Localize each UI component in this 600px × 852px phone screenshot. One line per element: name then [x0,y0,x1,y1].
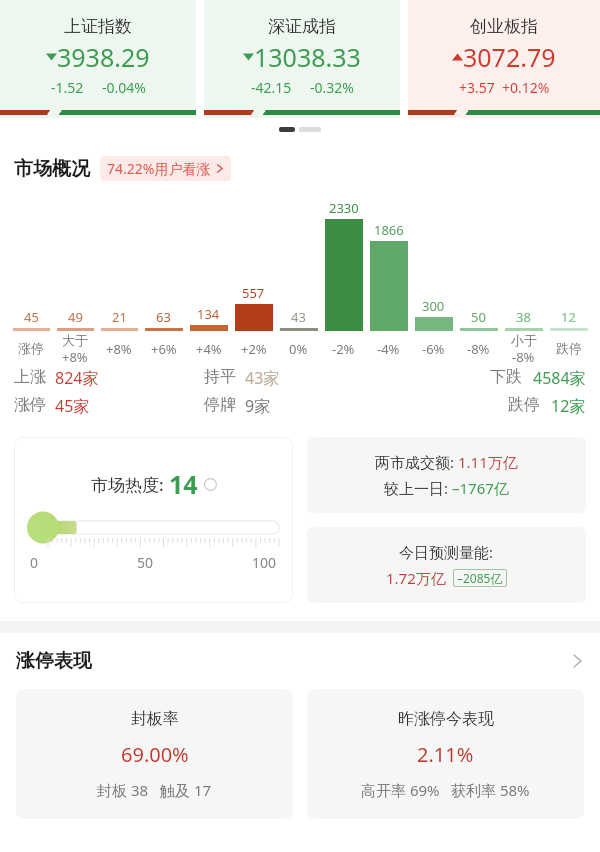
staticText: 3072.79 [463,40,556,74]
staticText: 134 [197,305,220,323]
staticText: 12 [561,308,576,326]
staticText: 小于 [511,332,537,348]
button[interactable]: 创业板指 [408,0,600,118]
button[interactable]: 今日预测量能: [307,527,586,603]
staticText: -8% [467,340,490,358]
staticText: 2.11% [417,741,474,768]
staticText: -1.52 [51,78,84,97]
staticText: 市场热度: [91,473,169,496]
staticText: 69.00% [121,741,189,768]
staticText: 0 [30,553,39,572]
staticText: 封板 38 [97,780,149,800]
button[interactable]: 市场热度: [14,437,293,603]
staticText: -6% [422,340,445,358]
staticText: -42.15 [251,78,292,97]
staticText: 封板率 [131,709,179,729]
staticText: +0.12% [502,78,550,97]
staticText: 较上一日: [384,478,452,498]
staticText: 557 [242,284,265,302]
staticText: 两市成交额: [375,452,458,472]
button[interactable]: 两市成交额: [307,437,586,513]
staticText: 深证成指 [268,16,336,37]
staticText: 43家 [245,367,280,389]
staticText: 昨涨停今表现 [398,709,494,729]
staticText: 12家 [551,395,586,417]
staticText: 上证指数 [64,16,132,37]
staticText: 涨停 [14,395,46,415]
staticText: -0.04% [102,78,146,97]
staticText: 100 [252,553,277,572]
staticText: +8% [106,340,132,358]
staticText: 50 [471,308,486,326]
staticText: 50 [137,553,154,572]
staticText: 13038.33 [254,40,361,74]
staticText: 涨停表现 [16,649,92,673]
staticText: +2% [241,340,267,358]
button[interactable]: 封板率 [16,689,293,819]
staticText: –1767亿 [452,478,509,498]
button[interactable]: 昨涨停今表现 [307,689,584,819]
button[interactable]: 上证指数 [0,0,196,118]
staticText: 38 [516,308,531,326]
staticText: 2330 [329,199,359,217]
staticText: 9家 [245,395,271,417]
staticText: 824家 [55,367,99,389]
staticText: 21 [112,308,127,326]
button[interactable]: 涨停表现 [0,649,600,673]
staticText: +6% [151,340,177,358]
button[interactable]: 74.22%用户看涨 [100,156,231,181]
staticText: 大于 [62,332,88,348]
staticText: 跌停 [508,395,540,415]
staticText: -0.32% [310,78,354,97]
staticText: 下跌 [490,367,522,387]
staticText: 1866 [374,221,404,239]
staticText: 今日预测量能: [399,542,494,562]
staticText: 49 [68,308,83,326]
staticText: 14 [169,467,198,501]
staticText: -4% [377,340,400,358]
staticText: 3938.29 [57,40,150,74]
staticText: 创业板指 [470,16,538,37]
staticText: 持平 [204,367,236,387]
other: 帮助 [204,478,217,491]
staticText: 43 [291,308,306,326]
staticText: 高开率 69% [361,780,440,800]
staticText: 触及 17 [160,780,212,800]
staticText: 获利率 58% [451,780,530,800]
staticText: 63 [156,308,171,326]
staticText: 市场概况 [14,157,90,181]
staticText: 45家 [55,395,90,417]
staticText: 300 [422,297,445,315]
staticText: -2% [332,340,355,358]
staticText: 1.72万亿 [386,568,446,588]
staticText: +4% [196,340,222,358]
staticText: 停牌 [204,395,236,415]
button[interactable]: 深证成指 [204,0,400,118]
staticText: 涨停 [18,340,44,356]
staticText: –2085亿 [457,570,503,586]
staticText: 1.11万亿 [458,452,518,472]
staticText: 4584家 [533,367,586,389]
staticText: 0% [289,340,308,358]
staticText: 跌停 [556,340,582,356]
staticText: 上涨 [14,367,46,387]
staticText: 74.22%用户看涨 [107,159,211,178]
staticText: 45 [24,308,39,326]
staticText: +3.57 [459,78,495,97]
staticText: -8% [512,348,535,366]
staticText: +8% [62,348,88,366]
